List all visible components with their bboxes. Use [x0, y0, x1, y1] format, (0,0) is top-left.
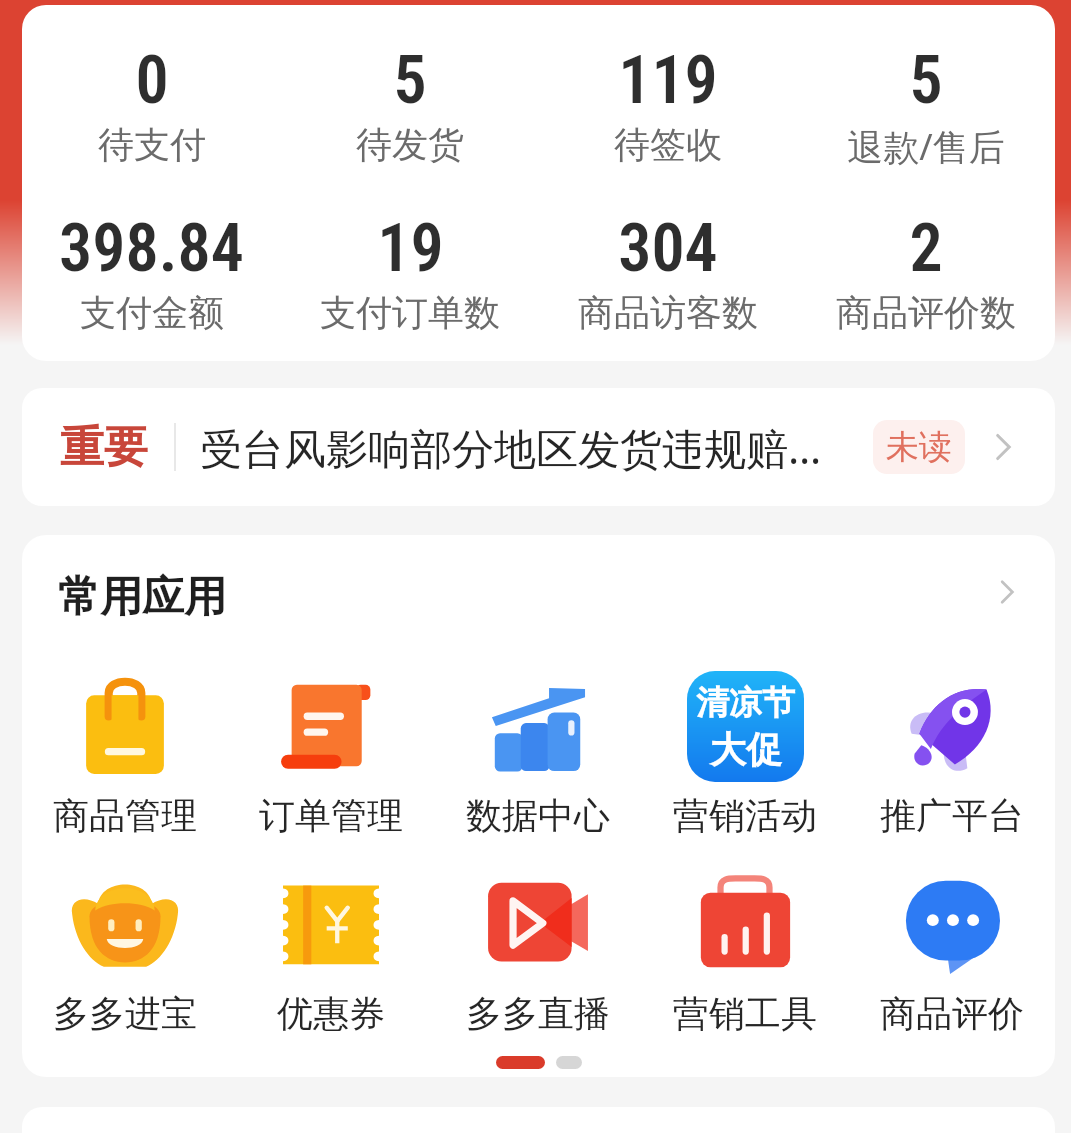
button[interactable]: 商品评价: [848, 876, 1055, 1036]
staticText: 未读: [886, 426, 952, 468]
button[interactable]: 119: [539, 42, 797, 164]
staticText: 营销工具: [673, 991, 817, 1036]
staticText: 订单管理: [259, 793, 403, 838]
staticText: 数据中心: [466, 793, 610, 838]
staticText: 受台风影响部分地区发货违规赔…: [200, 419, 822, 476]
staticText: 商品管理: [53, 793, 197, 838]
button[interactable]: 推广平台: [848, 678, 1055, 838]
button[interactable]: 0: [22, 42, 281, 164]
button[interactable]: 清凉节: [641, 678, 848, 838]
button[interactable]: 优惠券: [228, 876, 434, 1036]
staticText: 398.84: [59, 210, 244, 287]
staticText: 商品评价: [880, 991, 1024, 1036]
button[interactable]: 营销工具: [641, 876, 848, 1036]
button[interactable]: 商品管理: [22, 678, 228, 838]
button[interactable]: 多多直播: [434, 876, 641, 1036]
staticText: 支付订单数: [320, 290, 500, 335]
staticText: 清凉节: [696, 682, 795, 724]
staticText: 重要: [60, 420, 148, 475]
button[interactable]: More apps: [990, 576, 1022, 608]
staticText: 推广平台: [880, 793, 1024, 838]
button[interactable]: 2: [797, 210, 1055, 332]
staticText: 2: [909, 210, 943, 287]
other: Open notice: [984, 429, 1020, 465]
staticText: 待签收: [614, 122, 722, 167]
staticText: 多多直播: [466, 991, 610, 1036]
button[interactable]: 398.84: [22, 210, 281, 332]
staticText: 营销活动: [673, 793, 817, 838]
staticText: 304: [618, 210, 718, 287]
button[interactable]: 订单管理: [228, 678, 434, 838]
staticText: 商品评价数: [836, 290, 1016, 335]
button[interactable]: 数据中心: [434, 678, 641, 838]
staticText: 5: [909, 42, 943, 119]
staticText: 0: [135, 42, 169, 119]
button[interactable]: 304: [539, 210, 797, 332]
staticText: 支付金额: [80, 290, 224, 335]
button[interactable]: 多多进宝: [22, 876, 228, 1036]
staticText: 119: [618, 42, 718, 119]
staticText: 大促: [710, 727, 782, 772]
staticText: 商品访客数: [578, 290, 758, 335]
staticText: 19: [377, 210, 444, 287]
button[interactable]: 5: [797, 42, 1055, 168]
staticText: 退款/售后: [847, 122, 1005, 171]
staticText: 待支付: [98, 122, 206, 167]
staticText: 优惠券: [277, 991, 385, 1036]
button[interactable]: 重要: [22, 388, 1055, 506]
button[interactable]: 5: [281, 42, 539, 164]
staticText: 5: [393, 42, 427, 119]
staticText: 多多进宝: [53, 991, 197, 1036]
staticText: 待发货: [356, 122, 464, 167]
staticText: 常用应用: [58, 571, 226, 624]
button[interactable]: 19: [281, 210, 539, 332]
